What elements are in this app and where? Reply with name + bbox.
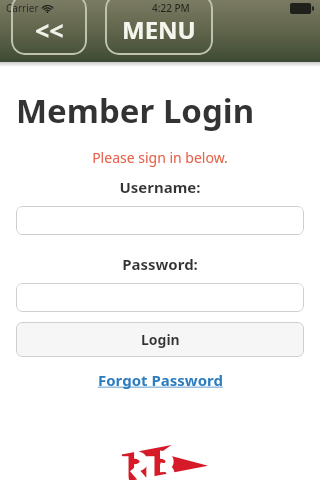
button[interactable]: Login — [16, 322, 304, 357]
button[interactable]: Text field — [16, 206, 304, 235]
button[interactable]: Back — [11, 0, 87, 55]
staticText: 4:22 PM — [152, 1, 190, 15]
staticText: Carrier — [6, 1, 39, 15]
staticText: Password: — [0, 254, 320, 274]
staticText: Please sign in below. — [0, 148, 320, 167]
staticText: Login — [141, 330, 180, 349]
button[interactable]: Forgot Password — [0, 370, 320, 390]
staticText: Member Login — [16, 88, 255, 133]
staticText: Forgot Password — [98, 370, 223, 390]
staticText: MENU — [122, 13, 196, 46]
staticText: << — [35, 13, 64, 47]
staticText: Username: — [0, 177, 320, 197]
button[interactable]: Text field — [16, 283, 304, 312]
button[interactable]: MENU — [105, 0, 213, 55]
